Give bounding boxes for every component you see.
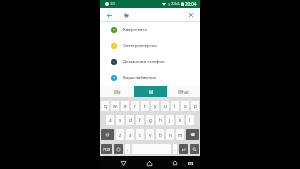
staticText: b [159, 132, 162, 138]
button[interactable]: Recents [169, 157, 181, 169]
button[interactable]: Back [117, 157, 129, 169]
button[interactable]: Домашний телефон [100, 54, 200, 70]
staticText: j [169, 117, 171, 123]
button[interactable]: What [167, 86, 200, 97]
button[interactable]: u [161, 101, 169, 111]
button[interactable]: Emoji [114, 144, 123, 154]
button[interactable]: k [176, 115, 184, 125]
staticText: . [174, 146, 176, 152]
staticText: M [149, 89, 153, 95]
button[interactable]: m [176, 129, 184, 140]
button[interactable]: Квартплата [100, 22, 200, 38]
button[interactable]: i [171, 101, 179, 111]
staticText: Электроэнергия [123, 43, 157, 49]
staticText: t [144, 103, 146, 109]
button[interactable]: h [156, 115, 164, 125]
button[interactable]: M [134, 86, 167, 97]
staticText: c [139, 132, 142, 138]
staticText: 30 [110, 1, 115, 7]
button[interactable]: Enter [179, 144, 188, 154]
button[interactable]: t [141, 101, 149, 111]
staticText: h [159, 117, 162, 123]
button[interactable]: g [146, 115, 154, 125]
button[interactable]: Search [190, 144, 199, 154]
staticText: l [189, 117, 191, 123]
staticText: r [134, 103, 136, 109]
button[interactable]: Backspace [186, 129, 199, 140]
button[interactable]: Home [143, 157, 155, 169]
staticText: What [178, 89, 189, 95]
button[interactable]: Cart [120, 8, 132, 22]
button[interactable]: r [131, 101, 139, 111]
button[interactable]: . [173, 144, 177, 154]
staticText: e [124, 103, 127, 109]
button[interactable]: b [156, 129, 164, 140]
staticText: w [113, 103, 117, 109]
staticText: Квартплата [123, 27, 147, 33]
button[interactable]: w [111, 101, 119, 111]
staticText: p [194, 103, 197, 109]
button[interactable]: n [166, 129, 174, 140]
button[interactable]: y [151, 101, 159, 111]
button[interactable]: a [106, 115, 114, 125]
staticText: q [104, 103, 107, 109]
button[interactable]: Водоснабжение [100, 70, 200, 86]
staticText: n [169, 132, 172, 138]
staticText: v [149, 132, 152, 138]
staticText: i [174, 103, 176, 109]
staticText: Домашний телефон [123, 59, 165, 65]
button[interactable]: Back [102, 8, 116, 22]
staticText: g [149, 117, 152, 123]
button[interactable]: v [146, 129, 154, 140]
button[interactable]: Электроэнергия [100, 38, 200, 54]
staticText: , [127, 146, 129, 152]
staticText: Me [114, 89, 121, 95]
staticText: ?123 [103, 147, 111, 152]
button[interactable]: o [181, 101, 189, 111]
button[interactable]: s [116, 115, 124, 125]
button[interactable]: f [136, 115, 144, 125]
button[interactable]: l [186, 115, 194, 125]
staticText: s [119, 117, 122, 123]
button[interactable]: z [116, 129, 124, 140]
button[interactable]: Keyboard [184, 157, 196, 169]
button[interactable]: e [121, 101, 129, 111]
button[interactable]: Me [100, 86, 134, 97]
staticText: k [179, 117, 182, 123]
button[interactable]: x [126, 129, 134, 140]
staticText: z [119, 132, 122, 138]
button[interactable]: , [125, 144, 130, 154]
staticText: d [129, 117, 132, 123]
staticText: 20:04 [185, 1, 197, 7]
button[interactable]: j [166, 115, 174, 125]
button[interactable]: Shift [101, 129, 114, 140]
button[interactable]: Close [185, 8, 197, 22]
button[interactable]: d [126, 115, 134, 125]
staticText: u [164, 103, 167, 109]
staticText: Водоснабжение [123, 75, 157, 81]
button[interactable]: c [136, 129, 144, 140]
staticText: o [184, 103, 187, 109]
staticText: x [129, 132, 132, 138]
button[interactable]: p [191, 101, 199, 111]
button[interactable]: ?123 [101, 144, 112, 154]
staticText: a [109, 117, 112, 123]
staticText: 23:4 [171, 1, 180, 7]
staticText: y [154, 103, 157, 109]
button[interactable]: q [101, 101, 109, 111]
staticText: m [178, 132, 183, 138]
staticText: f [139, 117, 141, 123]
